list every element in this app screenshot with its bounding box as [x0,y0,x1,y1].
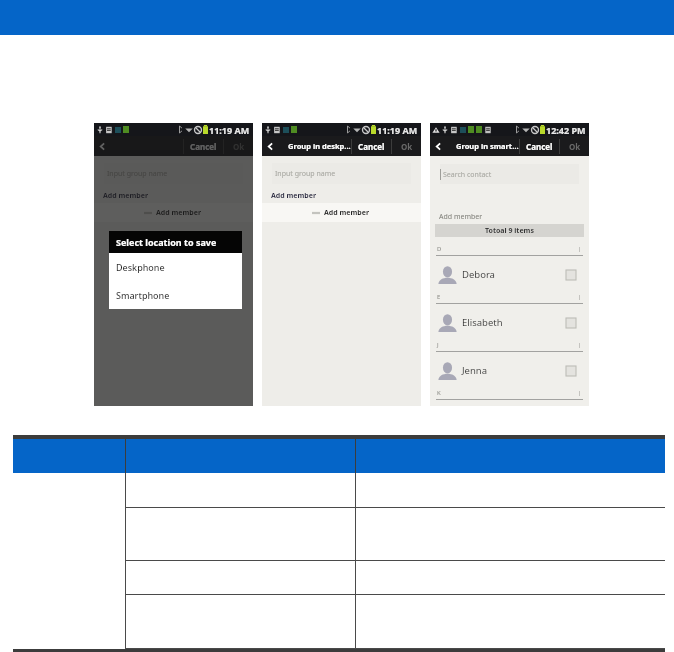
button[interactable]: Elisabeth [430,304,589,341]
staticText: Input group name [275,169,336,179]
staticText: Ok [233,141,245,152]
button[interactable]: Cancel [358,136,385,156]
staticText: E [437,293,441,301]
button[interactable]: Back [94,136,111,156]
staticText: | [578,293,582,301]
staticText: Add member [156,208,202,218]
button[interactable]: Deskphone [109,253,242,281]
button[interactable]: Input group name [104,163,243,184]
staticText: Select location to save [116,236,217,248]
button[interactable]: Cancel [526,136,553,156]
staticText: Ok [569,141,581,152]
staticText: Smartphone [116,289,170,301]
button[interactable]: Ok [560,136,589,156]
staticText: Input group name [107,169,168,179]
staticText: Deskphone [116,261,165,273]
staticText: Cancel [190,141,217,152]
staticText: K [437,389,441,397]
button[interactable]: Add member [94,203,253,222]
staticText: Search contact [443,170,492,180]
button[interactable]: Jenna [430,352,589,389]
staticText: Group in deskp... [288,141,351,151]
staticText: Ok [401,141,413,152]
staticText: | [578,245,582,253]
button[interactable]: Input group name [272,163,411,184]
button[interactable]: Debora [430,256,589,293]
staticText: Add member [271,191,317,201]
button[interactable]: Search contact [440,164,579,184]
button[interactable]: Add member [262,203,421,222]
button[interactable]: Ok [224,136,253,156]
staticText: Debora [462,268,495,281]
staticText: Elisabeth [462,316,503,329]
staticText: D [437,245,442,253]
staticText: Add member [103,191,149,201]
staticText: Totoal 9 items [485,226,534,236]
staticText: Cancel [526,141,553,152]
staticText: Jenna [462,364,488,377]
button[interactable]: Cancel [190,136,217,156]
button[interactable]: Back [262,136,279,156]
button[interactable]: Smartphone [109,281,242,309]
staticText: Cancel [358,141,385,152]
staticText: | [578,389,582,397]
button[interactable]: Ok [392,136,421,156]
staticText: | [578,341,582,349]
staticText: Add member [324,208,370,218]
staticText: 11:19 AM [209,124,250,136]
staticText: J [437,341,439,349]
button[interactable]: Back [430,136,447,156]
staticText: 12:42 PM [546,124,586,136]
staticText: Group in smartp... [456,141,519,151]
staticText: Add member [439,212,483,222]
staticText: 11:19 AM [377,124,418,136]
